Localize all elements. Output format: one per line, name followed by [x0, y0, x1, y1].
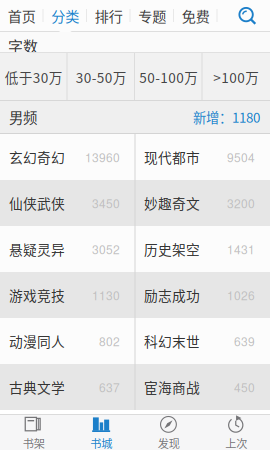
- staticText: 30-50万: [76, 67, 127, 87]
- staticText: 书架: [23, 435, 45, 450]
- button[interactable]: 新增：1180: [193, 107, 260, 127]
- staticText: 科幻末世: [144, 331, 200, 351]
- button[interactable]: 历史架空: [135, 226, 270, 272]
- staticText: 1026: [227, 286, 255, 304]
- button[interactable]: 仙侠武侠: [0, 180, 135, 226]
- staticText: 现代都市: [144, 147, 200, 167]
- button[interactable]: 书架: [0, 415, 67, 450]
- staticText: 排行: [95, 5, 123, 26]
- button[interactable]: 动漫同人: [0, 318, 135, 364]
- staticText: 男频: [9, 107, 37, 127]
- staticText: 50-100万: [139, 67, 198, 87]
- staticText: 励志成功: [144, 285, 200, 305]
- button[interactable]: 游戏竞技: [0, 272, 135, 318]
- staticText: 上次: [225, 435, 247, 450]
- button[interactable]: 排行: [87, 0, 130, 31]
- staticText: 637: [99, 378, 120, 396]
- button[interactable]: 免费: [174, 0, 217, 31]
- button[interactable]: >100万: [202, 53, 270, 101]
- staticText: 发现: [158, 435, 180, 450]
- button[interactable]: 发现: [135, 415, 202, 450]
- button[interactable]: 低于30万: [0, 53, 67, 101]
- button[interactable]: 分类: [43, 0, 87, 31]
- staticText: 玄幻奇幻: [9, 147, 65, 167]
- staticText: 新增：1180: [193, 107, 260, 127]
- button[interactable]: 上次: [202, 415, 270, 450]
- button[interactable]: 现代都市: [135, 134, 270, 180]
- button[interactable]: 妙趣奇文: [135, 180, 270, 226]
- button[interactable]: 30-50万: [67, 53, 135, 101]
- staticText: >100万: [213, 67, 259, 87]
- button[interactable]: 玄幻奇幻: [0, 134, 135, 180]
- staticText: 仙侠武侠: [9, 193, 65, 213]
- staticText: 分类: [51, 5, 79, 26]
- button[interactable]: 搜索: [224, 0, 270, 31]
- staticText: 9504: [227, 148, 255, 166]
- staticText: 古典文学: [9, 377, 65, 397]
- button[interactable]: 专题: [130, 0, 174, 31]
- staticText: 802: [99, 332, 120, 350]
- button[interactable]: 古典文学: [0, 364, 135, 410]
- staticText: 450: [234, 378, 255, 396]
- staticText: 书城: [90, 435, 112, 450]
- staticText: 字数: [8, 35, 38, 57]
- button[interactable]: 50-100万: [135, 53, 202, 101]
- staticText: 妙趣奇文: [144, 193, 200, 213]
- button[interactable]: 首页: [0, 0, 43, 31]
- staticText: 免费: [182, 5, 210, 26]
- staticText: 1431: [227, 240, 255, 258]
- staticText: 动漫同人: [9, 331, 65, 351]
- staticText: 宦海商战: [144, 377, 200, 397]
- staticText: 3200: [227, 194, 255, 212]
- staticText: 1130: [92, 286, 120, 304]
- staticText: 3052: [92, 240, 120, 258]
- button[interactable]: 励志成功: [135, 272, 270, 318]
- staticText: 专题: [138, 5, 166, 26]
- staticText: 游戏竞技: [9, 285, 65, 305]
- button[interactable]: 宦海商战: [135, 364, 270, 410]
- staticText: 639: [234, 332, 255, 350]
- staticText: 悬疑灵异: [9, 239, 65, 259]
- button[interactable]: 悬疑灵异: [0, 226, 135, 272]
- staticText: 历史架空: [144, 239, 200, 259]
- staticText: 首页: [8, 5, 36, 26]
- staticText: 13960: [85, 148, 120, 166]
- staticText: 3450: [92, 194, 120, 212]
- button[interactable]: 书城: [67, 415, 135, 450]
- button[interactable]: 科幻末世: [135, 318, 270, 364]
- staticText: 低于30万: [5, 67, 63, 87]
